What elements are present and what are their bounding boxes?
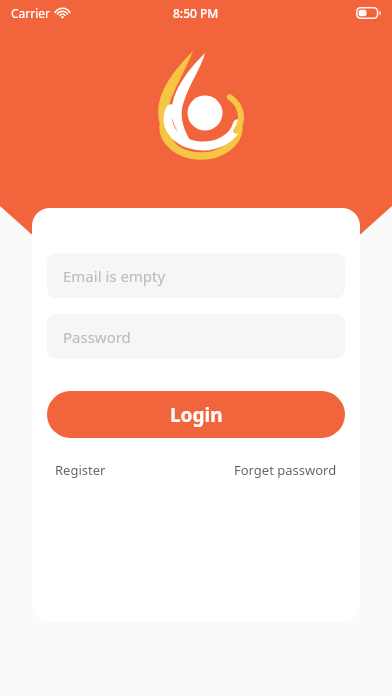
button[interactable]: Forget password [230, 456, 341, 484]
staticText: Register [55, 461, 106, 479]
staticText: Forget password [234, 461, 337, 479]
other: Wi-Fi signal [56, 8, 69, 18]
staticText: Email is empty [63, 266, 166, 286]
button[interactable]: Register [51, 456, 110, 484]
button[interactable]: Login [47, 391, 345, 438]
staticText: Carrier [11, 5, 51, 21]
staticText: 8:50 PM [173, 5, 219, 21]
staticText: Password [63, 327, 131, 347]
button[interactable]: Password [47, 314, 345, 359]
staticText: Login [170, 402, 223, 428]
button[interactable]: Email is empty [47, 253, 345, 298]
other: Battery [356, 7, 382, 19]
